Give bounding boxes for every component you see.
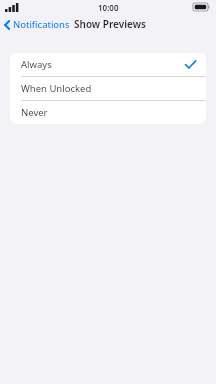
staticText: Show Previews <box>74 17 146 31</box>
staticText: Never <box>21 106 48 119</box>
button[interactable]: Never <box>10 101 206 124</box>
button[interactable]: Back <box>0 16 74 33</box>
button[interactable]: When Unlocked <box>10 77 206 101</box>
button[interactable]: Always <box>10 53 206 77</box>
staticText: When Unlocked <box>21 82 92 95</box>
staticText: Always <box>21 58 52 71</box>
staticText: Notifications <box>13 18 70 31</box>
staticText: 10:00 <box>98 2 119 13</box>
other: Back <box>4 20 10 30</box>
